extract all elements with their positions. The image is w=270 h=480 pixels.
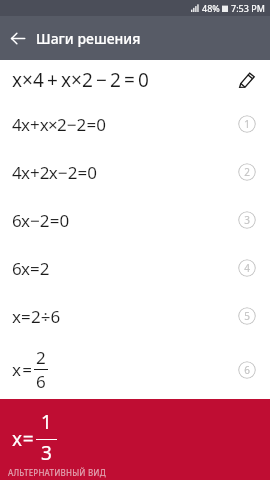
- staticText: 7:53 PM: [231, 2, 265, 14]
- button[interactable]: 4x + x×2 − 2 = 0: [0, 100, 270, 148]
- button[interactable]: 6x = 2: [0, 244, 270, 292]
- staticText: 48%: [202, 2, 220, 14]
- button[interactable]: x = 2 ÷ 6: [0, 292, 270, 340]
- button[interactable]: Back: [0, 20, 36, 56]
- staticText: 1: [41, 409, 52, 435]
- staticText: 1: [244, 117, 250, 131]
- staticText: x×4 + x×2 − 2 = 0: [12, 67, 149, 93]
- staticText: 3: [41, 440, 52, 466]
- button[interactable]: Edit: [235, 68, 259, 92]
- staticText: 6: [36, 370, 46, 393]
- staticText: 5: [244, 309, 250, 323]
- button[interactable]: x =: [0, 399, 270, 480]
- button[interactable]: 6: [238, 361, 256, 379]
- staticText: x =: [12, 426, 33, 452]
- staticText: 6x = 2: [12, 257, 49, 280]
- button[interactable]: 5: [238, 307, 256, 325]
- staticText: x = 2 ÷ 6: [12, 305, 60, 328]
- staticText: Шаги решения: [36, 29, 141, 48]
- button[interactable]: 1: [238, 115, 256, 133]
- staticText: 3: [244, 213, 250, 227]
- button[interactable]: 6x − 2 = 0: [0, 196, 270, 244]
- staticText: 2: [36, 346, 46, 369]
- button[interactable]: x×4 + x×2 − 2 = 0: [0, 60, 270, 100]
- staticText: 6x − 2 = 0: [12, 209, 69, 232]
- staticText: АЛЬТЕРНАТИВНЫЙ ВИД: [8, 467, 106, 478]
- staticText: 6: [244, 363, 250, 377]
- staticText: 4: [244, 261, 250, 275]
- staticText: 2: [244, 165, 250, 179]
- button[interactable]: x =: [0, 340, 270, 399]
- staticText: x =: [12, 358, 32, 381]
- staticText: 4x + x×2 − 2 = 0: [12, 113, 106, 136]
- button[interactable]: 4: [238, 259, 256, 277]
- button[interactable]: 2: [238, 163, 256, 181]
- button[interactable]: 3: [238, 211, 256, 229]
- button[interactable]: 4x + 2x − 2 = 0: [0, 148, 270, 196]
- staticText: 4x + 2x − 2 = 0: [12, 161, 97, 184]
